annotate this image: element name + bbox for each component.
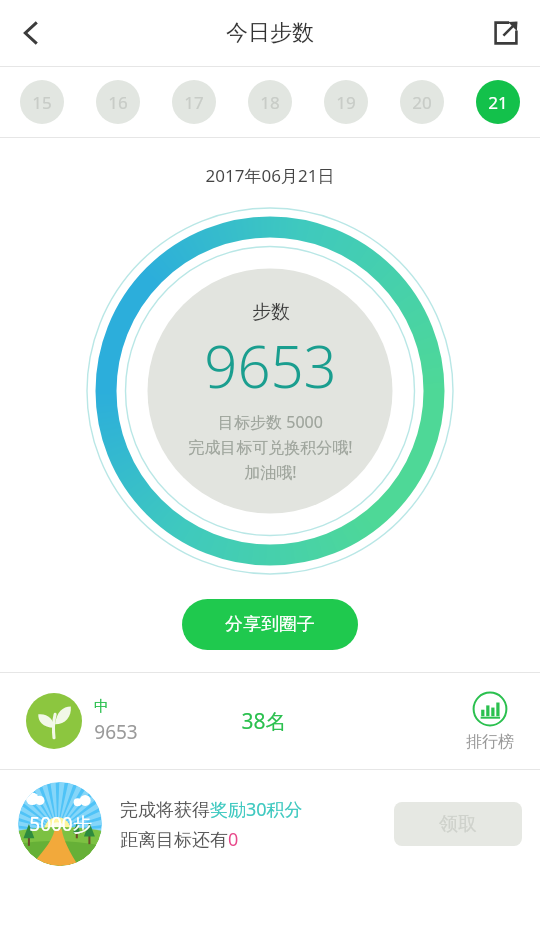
staticText: 距离目标还有0 [120, 827, 239, 852]
staticText: 分享到圈子 [225, 613, 315, 636]
staticText: 18 [260, 91, 280, 114]
staticText: 加油哦! [244, 461, 297, 483]
staticText: 完成目标可兑换积分哦! [188, 436, 353, 458]
staticText: 领取 [439, 812, 477, 836]
staticText: 20 [412, 91, 432, 114]
staticText: 21 [488, 91, 508, 114]
button[interactable]: 15 [20, 80, 64, 124]
button[interactable]: 17 [172, 80, 216, 124]
staticText: 9653 [204, 326, 337, 405]
staticText: 16 [108, 91, 128, 114]
staticText: 完成将获得奖励30积分 [120, 797, 303, 822]
staticText: 今日步数 [226, 19, 314, 47]
staticText: 2017年06月21日 [0, 164, 540, 187]
staticText: 5000步 [29, 811, 92, 837]
button[interactable]: 16 [96, 80, 140, 124]
staticText: 目标步数 5000 [218, 411, 323, 433]
button[interactable]: 18 [248, 80, 292, 124]
staticText: 38名 [241, 707, 287, 736]
button[interactable]: 领取 [394, 802, 522, 846]
button[interactable]: 19 [324, 80, 368, 124]
button[interactable]: 20 [400, 80, 444, 124]
staticText: 17 [184, 91, 204, 114]
staticText: 排行榜 [466, 732, 514, 752]
button[interactable]: 21 [476, 80, 520, 124]
staticText: 中 [94, 697, 109, 716]
staticText: 19 [336, 91, 356, 114]
button[interactable]: 中 [26, 693, 138, 749]
staticText: 15 [32, 91, 52, 114]
button[interactable]: 排行榜 [466, 691, 514, 752]
staticText: 步数 [252, 300, 290, 324]
staticText: 9653 [94, 719, 138, 745]
button[interactable]: Share [480, 7, 532, 59]
button[interactable]: Back [4, 6, 58, 60]
button[interactable]: 分享到圈子 [182, 599, 358, 650]
